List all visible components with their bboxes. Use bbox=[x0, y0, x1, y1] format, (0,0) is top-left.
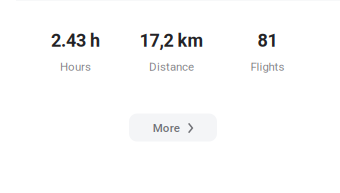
staticText: 17,2 km bbox=[139, 30, 203, 51]
staticText: More bbox=[153, 121, 180, 135]
staticText: Hours bbox=[60, 60, 91, 73]
button[interactable]: More bbox=[129, 113, 217, 141]
staticText: 2.43 h bbox=[51, 30, 100, 51]
staticText: 81 bbox=[257, 30, 277, 51]
staticText: Flights bbox=[250, 60, 284, 73]
staticText: Distance bbox=[149, 60, 194, 73]
